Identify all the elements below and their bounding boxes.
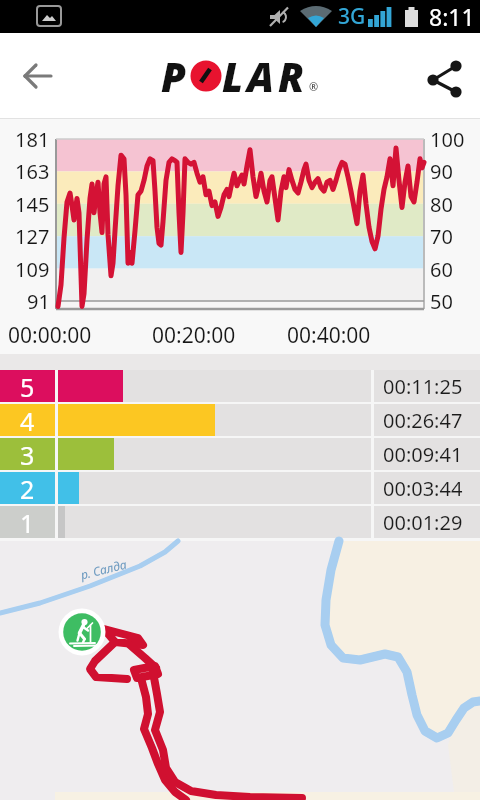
staticText: 3 bbox=[20, 438, 35, 470]
staticText: 00:09:41 bbox=[383, 441, 463, 468]
staticText: 00:03:44 bbox=[383, 475, 463, 502]
staticText: 127 bbox=[15, 223, 50, 250]
staticText: 1 bbox=[20, 506, 35, 538]
staticText: 00:11:25 bbox=[383, 373, 463, 400]
staticText: 2 bbox=[20, 472, 35, 504]
staticText: 4 bbox=[20, 404, 35, 436]
staticText: 109 bbox=[15, 256, 50, 283]
button[interactable] bbox=[0, 33, 76, 118]
button[interactable]: 4 bbox=[0, 404, 480, 436]
staticText: P bbox=[161, 49, 190, 103]
staticText: 181 bbox=[15, 126, 50, 153]
staticText: 3G bbox=[338, 2, 366, 31]
button[interactable]: 5 bbox=[0, 370, 480, 402]
staticText: 145 bbox=[15, 191, 50, 218]
staticText: р. Салда bbox=[79, 556, 128, 582]
staticText: LAR bbox=[222, 49, 309, 103]
staticText: 00:00:00 bbox=[8, 321, 92, 350]
staticText: 5 bbox=[20, 370, 35, 402]
staticText: 70 bbox=[430, 223, 453, 250]
button[interactable]: 3 bbox=[0, 438, 480, 470]
staticText: 90 bbox=[430, 158, 453, 185]
staticText: 50 bbox=[430, 288, 453, 315]
staticText: 80 bbox=[430, 191, 453, 218]
staticText: 60 bbox=[430, 256, 453, 283]
staticText: 100 bbox=[430, 126, 465, 153]
button[interactable]: 1 bbox=[0, 506, 480, 538]
staticText: 163 bbox=[15, 158, 50, 185]
staticText: 8:11 bbox=[429, 1, 475, 32]
staticText: 00:01:29 bbox=[383, 509, 463, 536]
staticText: ® bbox=[309, 79, 319, 94]
button[interactable] bbox=[408, 33, 480, 118]
staticText: 00:26:47 bbox=[383, 407, 463, 434]
staticText: 00:20:00 bbox=[152, 321, 236, 350]
staticText: 91 bbox=[27, 288, 50, 315]
button[interactable]: 2 bbox=[0, 472, 480, 504]
staticText: 00:40:00 bbox=[287, 321, 371, 350]
